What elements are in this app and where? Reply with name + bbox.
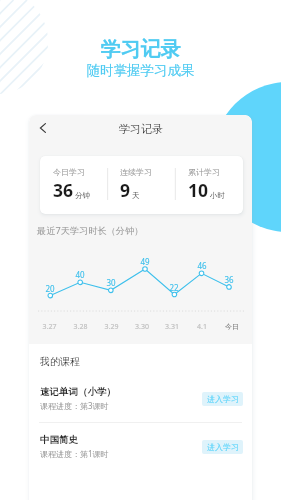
staticText: 10 — [188, 178, 209, 202]
staticText: 分钟 — [75, 191, 90, 200]
button[interactable]: 进入学习 — [202, 440, 243, 454]
staticText: 学习记录 — [0, 37, 281, 62]
staticText: 我的课程 — [40, 355, 80, 368]
staticText: 49 — [135, 256, 155, 267]
staticText: 中国简史 — [40, 434, 78, 446]
staticText: 进入学习 — [207, 394, 239, 404]
staticText: 今日学习 — [53, 167, 85, 177]
staticText: 今日 — [217, 322, 247, 331]
staticText: 4.1 — [187, 322, 217, 332]
staticText: 36 — [219, 274, 239, 285]
staticText: 9 — [120, 178, 131, 202]
staticText: 最近7天学习时长（分钟） — [37, 224, 144, 237]
staticText: 40 — [70, 269, 90, 280]
staticText: 随时掌握学习成果 — [0, 62, 281, 79]
staticText: 46 — [192, 260, 212, 271]
staticText: 课程进度：第3课时 — [40, 400, 109, 411]
staticText: 累计学习 — [188, 167, 220, 177]
staticText: 速记单词（小学） — [40, 386, 116, 398]
staticText: 学习记录 — [119, 122, 163, 136]
staticText: 进入学习 — [207, 442, 239, 452]
staticText: 3.29 — [96, 322, 127, 332]
staticText: 22 — [164, 282, 184, 293]
button[interactable]: 速记单词（小学） — [29, 375, 252, 422]
staticText: 3.27 — [34, 322, 65, 332]
button[interactable]: 进入学习 — [202, 392, 243, 406]
staticText: 3.31 — [157, 322, 187, 332]
staticText: 3.28 — [65, 322, 96, 332]
staticText: 20 — [40, 283, 60, 294]
staticText: 连续学习 — [120, 167, 152, 177]
staticText: 天 — [132, 191, 140, 200]
staticText: 30 — [101, 277, 121, 288]
staticText: 3.30 — [127, 322, 157, 332]
staticText: 课程进度：第1课时 — [40, 448, 109, 459]
button[interactable]: Back — [33, 118, 53, 138]
staticText: 小时 — [210, 191, 225, 200]
button[interactable]: 中国简史 — [29, 423, 252, 470]
staticText: 36 — [53, 178, 74, 202]
